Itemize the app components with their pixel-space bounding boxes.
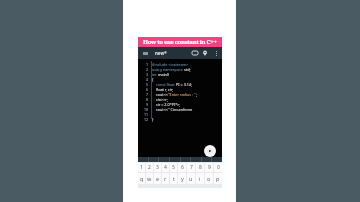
- staticText: e: [156, 175, 159, 182]
- button[interactable]: Save: [190, 48, 200, 58]
- button[interactable]: t: [170, 173, 177, 184]
- staticText: std;: [184, 67, 191, 72]
- staticText: cout<<: [152, 107, 168, 112]
- staticText: w: [147, 175, 152, 182]
- staticText: 1: [140, 164, 143, 171]
- staticText: 4: [145, 77, 148, 82]
- staticText: 3: [156, 164, 159, 171]
- button[interactable]: 7: [187, 163, 195, 172]
- staticText: 6: [145, 87, 148, 92]
- staticText: i: [199, 175, 201, 182]
- staticText: new*: [155, 50, 167, 56]
- staticText: t: [173, 175, 175, 182]
- staticText: r: [164, 175, 167, 182]
- staticText: " Circumferen: [168, 107, 193, 112]
- staticText: const float: [152, 82, 176, 87]
- staticText: 9: [145, 102, 148, 107]
- button[interactable]: 1: [138, 163, 145, 172]
- button[interactable]: u: [187, 173, 195, 184]
- button[interactable]: Menu: [140, 48, 150, 58]
- staticText: o: [207, 175, 211, 182]
- staticText: int: [152, 72, 158, 77]
- button[interactable]: o: [205, 173, 213, 184]
- button[interactable]: p: [214, 173, 222, 184]
- staticText: PI = 3.14;: [176, 82, 193, 87]
- staticText: cir = 2.0*PI*r;: [152, 102, 180, 107]
- staticText: main(): [158, 72, 170, 77]
- staticText: 10: [143, 107, 148, 112]
- staticText: 4: [164, 164, 167, 171]
- staticText: using namespace: [152, 67, 184, 72]
- staticText: 7: [145, 92, 148, 97]
- staticText: p: [216, 175, 220, 182]
- staticText: }: [152, 117, 154, 122]
- staticText: y: [181, 175, 184, 182]
- staticText: ;: [196, 92, 198, 97]
- button[interactable]: 2: [146, 163, 153, 172]
- staticText: 2: [145, 67, 148, 72]
- staticText: u: [189, 175, 193, 182]
- staticText: "Enter radius : ": [168, 92, 196, 97]
- button[interactable]: More options: [211, 48, 221, 58]
- staticText: 5: [145, 82, 148, 87]
- staticText: #include <iostream>: [152, 62, 189, 67]
- button[interactable]: w: [146, 173, 153, 184]
- button[interactable]: q: [138, 173, 145, 184]
- staticText: 3: [145, 72, 148, 77]
- button[interactable]: 6: [178, 163, 186, 172]
- staticText: {: [152, 77, 154, 82]
- staticText: How to use constant in C++: [143, 37, 217, 45]
- button[interactable]: 5: [170, 163, 177, 172]
- staticText: 11: [143, 112, 148, 117]
- staticText: 6: [181, 164, 184, 171]
- button[interactable]: i: [196, 173, 204, 184]
- staticText: 7: [190, 164, 193, 171]
- staticText: 8: [199, 164, 202, 171]
- staticText: cin>>r;: [152, 97, 168, 102]
- button[interactable]: e: [154, 173, 161, 184]
- staticText: 12: [143, 117, 148, 122]
- button[interactable]: 8: [196, 163, 204, 172]
- button[interactable]: 0: [214, 163, 222, 172]
- staticText: q: [140, 175, 144, 182]
- staticText: 8: [145, 97, 148, 102]
- button[interactable]: r: [162, 173, 169, 184]
- button[interactable]: 3: [154, 163, 161, 172]
- staticText: 2: [148, 164, 151, 171]
- staticText: 9: [208, 164, 211, 171]
- staticText: cout<<: [152, 92, 168, 97]
- staticText: 1: [145, 62, 148, 67]
- staticText: float r, cir;: [152, 87, 174, 92]
- button[interactable]: 9: [205, 163, 213, 172]
- button[interactable]: Run: [204, 145, 216, 157]
- staticText: 5: [172, 164, 175, 171]
- button[interactable]: Location: [200, 48, 210, 58]
- button[interactable]: 4: [162, 163, 169, 172]
- button[interactable]: y: [178, 173, 186, 184]
- staticText: 0: [217, 164, 220, 171]
